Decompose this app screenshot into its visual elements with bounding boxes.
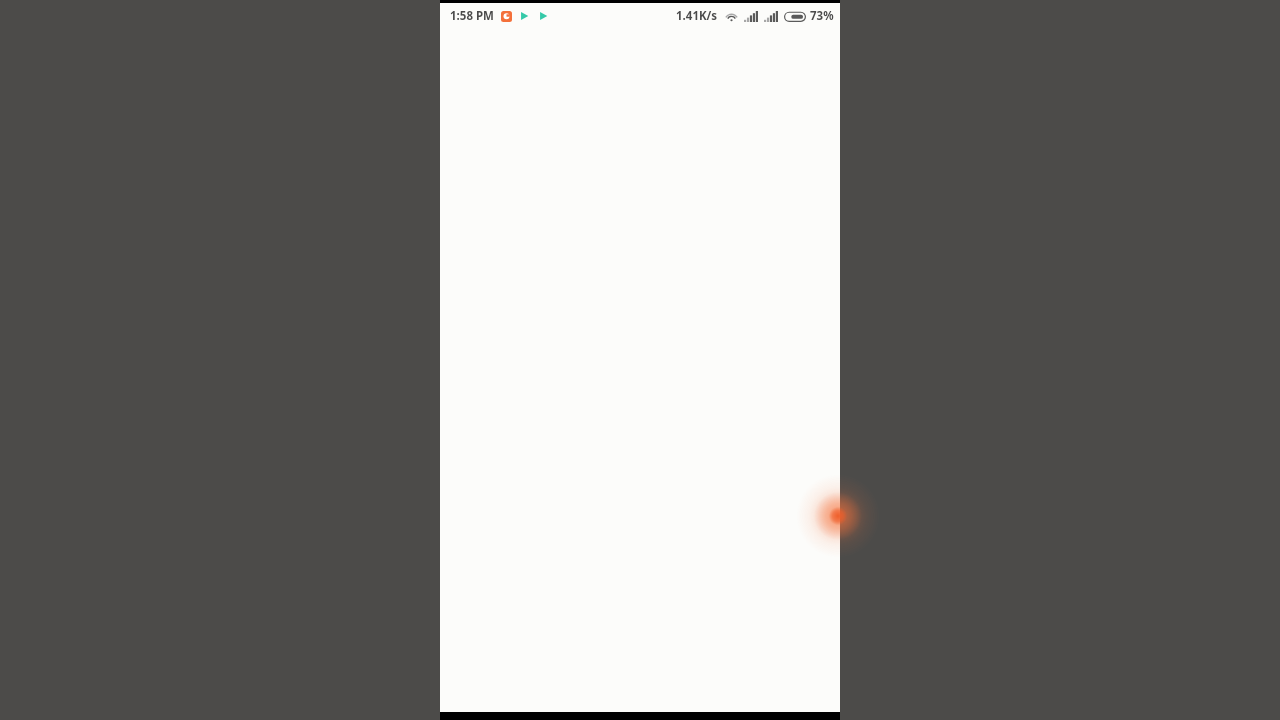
staticText: 73%: [810, 8, 834, 24]
staticText: 1.41K/s: [676, 8, 718, 24]
button[interactable]: Floating action button: [798, 476, 878, 556]
staticText: 1:58 PM: [450, 8, 494, 24]
other: Notification: [501, 11, 512, 22]
other: Media playing: [520, 11, 529, 21]
other: Media playing: [539, 11, 548, 21]
